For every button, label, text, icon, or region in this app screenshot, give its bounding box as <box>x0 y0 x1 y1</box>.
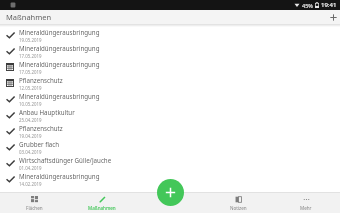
staticText: Grubber flach <box>19 140 60 148</box>
button[interactable]: Pflanzenschutz <box>0 75 340 91</box>
button[interactable]: Anbau Hauptkultur <box>0 107 340 123</box>
staticText: 45% <box>302 2 313 9</box>
staticText: 03.04.2019 <box>19 149 42 155</box>
staticText: 12.05.2019 <box>19 85 42 91</box>
button[interactable]: Mehr <box>272 193 340 213</box>
button[interactable]: Mineraldüngerausbringung <box>0 171 340 187</box>
staticText: Flächen <box>26 205 43 211</box>
staticText: Maßnahmen <box>88 205 116 211</box>
button[interactable]: Mineraldüngerausbringung <box>0 43 340 59</box>
staticText: 14.02.2019 <box>19 181 42 187</box>
button[interactable]: Mineraldüngerausbringung <box>0 27 340 43</box>
staticText: Mehr <box>300 205 312 211</box>
button[interactable]: Wirtschaftsdünger Gülle/Jauche <box>0 155 340 171</box>
staticText: Mineraldüngerausbringung <box>19 60 100 68</box>
staticText: Wirtschaftsdünger Gülle/Jauche <box>19 156 112 164</box>
staticText: 10.05.2019 <box>19 101 42 107</box>
staticText: 01.04.2019 <box>19 165 42 171</box>
button[interactable]: Notizen <box>204 193 272 213</box>
staticText: 25.04.2019 <box>19 117 42 123</box>
staticText: Pflanzenschutz <box>19 76 63 84</box>
button[interactable]: Maßnahmen <box>68 193 136 213</box>
button[interactable]: Flächen <box>0 193 68 213</box>
button[interactable]: Hinzufügen <box>326 10 340 24</box>
button[interactable]: Neue Maßnahme hinzufügen <box>157 179 184 206</box>
staticText: Notizen <box>230 205 247 211</box>
staticText: 17.05.2019 <box>19 69 42 75</box>
staticText: Mineraldüngerausbringung <box>19 92 100 100</box>
button[interactable]: Pflanzenschutz <box>0 123 340 139</box>
staticText: 19.04.2019 <box>19 133 42 139</box>
staticText: Mineraldüngerausbringung <box>19 28 100 36</box>
staticText: Maßnahmen <box>6 12 52 22</box>
staticText: 19:41 <box>321 1 337 9</box>
staticText: Mineraldüngerausbringung <box>19 44 100 52</box>
staticText: Pflanzenschutz <box>19 124 63 132</box>
staticText: Anbau Hauptkultur <box>19 108 75 116</box>
staticText: Mineraldüngerausbringung <box>19 172 100 180</box>
button[interactable]: Grubber flach <box>0 139 340 155</box>
button[interactable]: Mineraldüngerausbringung <box>0 91 340 107</box>
staticText: 17.05.2019 <box>19 53 42 59</box>
staticText: 19.05.2019 <box>19 37 42 43</box>
button[interactable]: Mineraldüngerausbringung <box>0 59 340 75</box>
